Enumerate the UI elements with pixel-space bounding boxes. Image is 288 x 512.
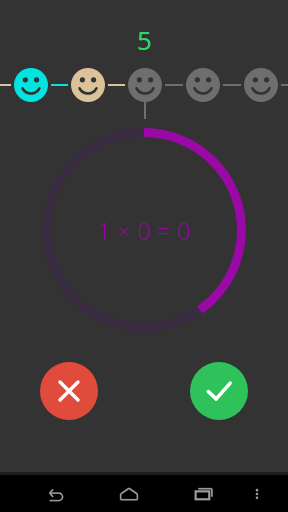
button[interactable]: Wrong bbox=[40, 362, 98, 420]
button[interactable]: More options bbox=[240, 477, 274, 511]
staticText: 5 bbox=[137, 22, 152, 57]
button[interactable]: Recent apps bbox=[180, 475, 228, 512]
button[interactable]: Back bbox=[30, 475, 78, 512]
button[interactable]: Home bbox=[105, 475, 153, 512]
button[interactable]: Correct bbox=[190, 362, 248, 420]
staticText: 1 × 0 = 0 bbox=[97, 214, 191, 247]
